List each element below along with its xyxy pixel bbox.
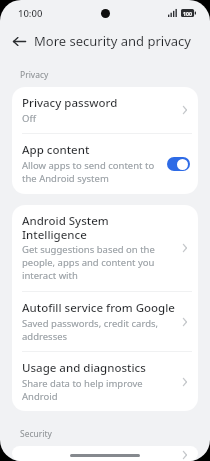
staticText: Off	[22, 112, 36, 125]
staticText: App content	[22, 142, 90, 158]
button[interactable]: App content	[12, 134, 198, 194]
button[interactable]: Payment protection	[12, 446, 198, 461]
staticText: Usage and diagnostics	[22, 360, 146, 376]
button[interactable]: Autofill service from Google	[12, 292, 198, 351]
button[interactable]: Usage and diagnostics	[12, 352, 198, 411]
staticText: Saved passwords, credit cards, addresses	[22, 317, 176, 343]
staticText: Security	[20, 428, 52, 440]
staticText: Android System Intelligence	[22, 213, 176, 242]
staticText: Autofill service from Google	[22, 300, 175, 316]
staticText: 10:00	[18, 7, 43, 20]
button[interactable]: Privacy password	[12, 87, 198, 133]
staticText: Share data to help improve Android	[22, 377, 176, 403]
staticText: Privacy password	[22, 95, 118, 111]
button[interactable]: Back	[8, 30, 30, 52]
staticText: 100	[183, 10, 192, 17]
staticText: Privacy	[20, 69, 49, 81]
button[interactable]: Android System Intelligence	[12, 205, 198, 291]
staticText: More security and privacy	[34, 32, 191, 50]
staticText: Allow apps to send content to the Androi…	[22, 159, 163, 185]
staticText: Get suggestions based on the people, app…	[22, 243, 176, 282]
